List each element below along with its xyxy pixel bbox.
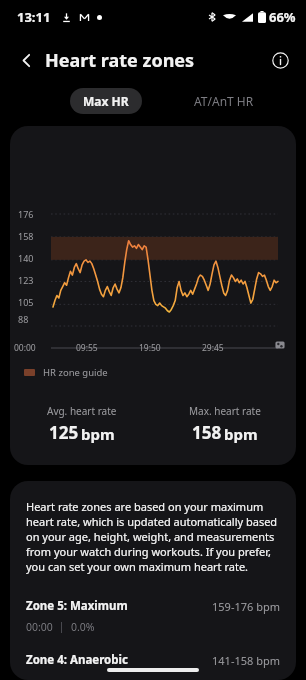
staticText: 140: [18, 252, 34, 264]
staticText: Heart rate zones are based on your maxim…: [26, 499, 280, 574]
staticText: 09:55: [76, 342, 98, 354]
button[interactable]: Zone 5: Maximum: [26, 598, 280, 634]
staticText: 158: [18, 230, 34, 242]
staticText: HR zone guide: [43, 366, 108, 379]
staticText: 123: [18, 274, 34, 286]
staticText: 00:00: [14, 342, 36, 354]
staticText: 29:45: [202, 342, 224, 354]
staticText: Zone 5: Maximum: [26, 598, 128, 614]
staticText: Heart rate zones: [45, 48, 195, 73]
staticText: bpm: [81, 424, 115, 444]
staticText: AT/AnT HR: [194, 93, 254, 109]
button[interactable]: AT/AnT HR: [184, 88, 264, 114]
button[interactable]: Zone 4: Anaerobic: [26, 652, 280, 668]
staticText: 159-176 bpm: [212, 599, 280, 614]
staticText: 176: [18, 208, 34, 220]
staticText: 88: [18, 313, 29, 325]
button[interactable]: Max HR: [70, 88, 142, 114]
staticText: Max HR: [83, 93, 129, 109]
staticText: 0.0%: [71, 620, 95, 634]
button[interactable]: Information: [262, 42, 298, 78]
staticText: 19:50: [139, 342, 161, 354]
staticText: 158: [192, 421, 222, 444]
staticText: 00:00: [26, 620, 53, 634]
staticText: 66%: [269, 8, 296, 26]
staticText: Avg. heart rate: [47, 404, 117, 418]
staticText: 105: [18, 296, 34, 308]
button[interactable]: Lap markers: [274, 339, 286, 351]
staticText: 141-158 bpm: [212, 653, 280, 668]
button[interactable]: Back: [8, 42, 44, 78]
staticText: Zone 4: Anaerobic: [26, 652, 128, 668]
staticText: bpm: [224, 424, 258, 444]
staticText: Max. heart rate: [189, 404, 261, 418]
staticText: 125: [49, 421, 79, 444]
staticText: 13:11: [17, 8, 51, 26]
